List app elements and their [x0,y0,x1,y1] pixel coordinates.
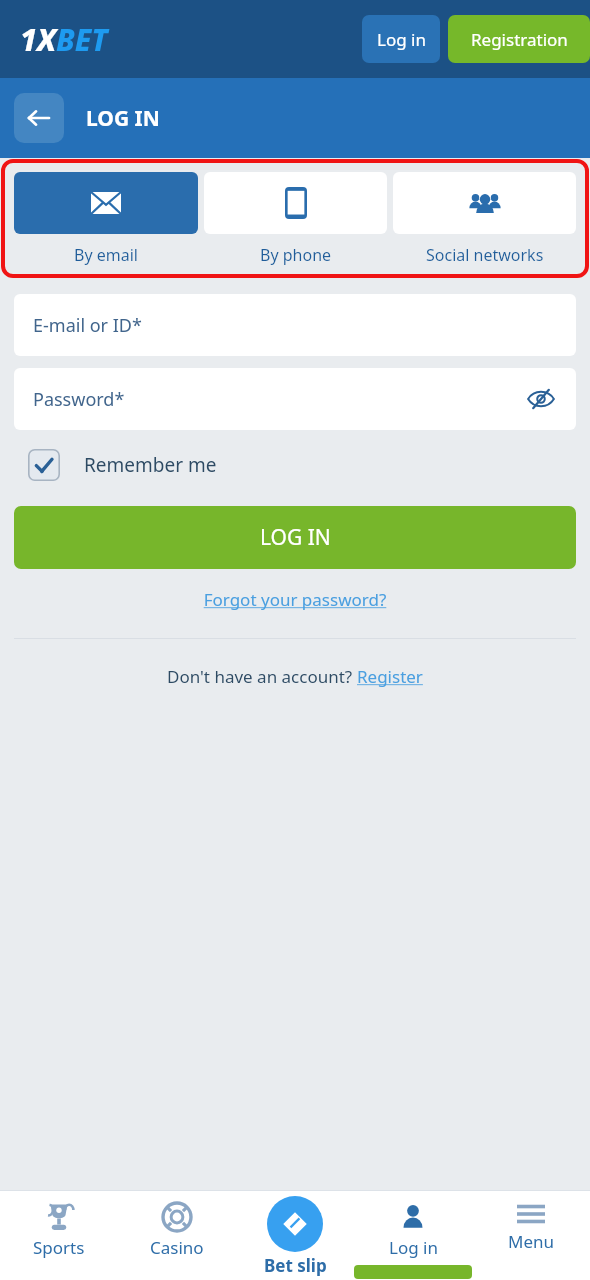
button[interactable]: Back [14,93,64,143]
staticText: LOG IN [86,104,160,133]
staticText: Log in [377,28,426,51]
button[interactable]: By phone [204,172,387,266]
staticText: Don't have an account? [167,665,357,688]
button[interactable]: Forgot your password? [0,585,590,614]
staticText: BET [56,19,108,60]
staticText: By email [74,244,138,266]
button[interactable]: Social networks [393,172,576,266]
staticText: Sports [33,1236,85,1259]
staticText: LOG IN [260,523,331,552]
staticText: Registration [471,28,568,51]
staticText: Social networks [426,244,544,266]
button[interactable]: Bet slip [236,1190,354,1280]
button[interactable]: Remember me [28,449,590,481]
staticText: Log in [389,1236,438,1259]
button[interactable]: LOG IN [14,506,576,569]
staticText: Menu [508,1230,555,1253]
button[interactable]: Show password [524,382,558,416]
button[interactable]: Log in [354,1190,472,1280]
staticText: By phone [260,244,332,266]
button[interactable]: Registration [448,15,590,63]
button[interactable]: By email [14,172,198,266]
button[interactable]: E-mail or ID* [14,294,576,356]
staticText: E-mail or ID* [33,313,142,338]
button[interactable]: Sports [0,1190,118,1280]
button[interactable]: Log in [362,15,440,63]
staticText: Remember me [84,452,217,478]
button[interactable]: Casino [118,1190,236,1280]
button[interactable]: Password* [14,368,576,430]
staticText: Casino [150,1236,204,1259]
staticText: 1X [20,19,56,60]
staticText: Bet slip [264,1254,327,1277]
button[interactable]: Menu [472,1190,590,1280]
staticText: Password* [33,387,125,412]
button[interactable]: Register [357,665,423,688]
